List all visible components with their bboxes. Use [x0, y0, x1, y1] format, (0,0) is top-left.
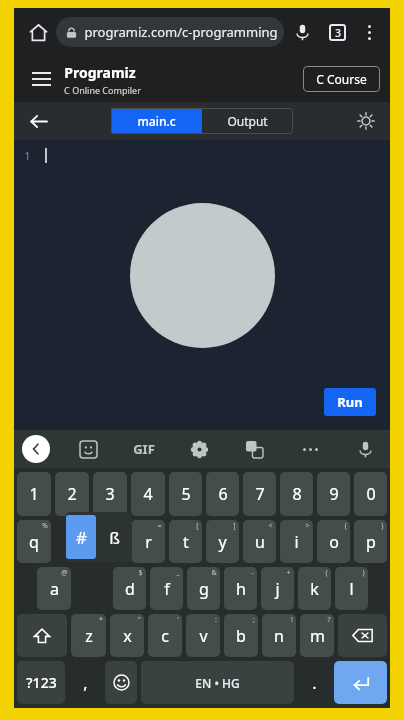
button[interactable]: r	[131, 520, 165, 563]
staticText: x	[123, 625, 132, 647]
staticText: ;	[253, 615, 255, 625]
button[interactable]: ß	[96, 512, 132, 562]
button[interactable]: More options	[354, 17, 384, 47]
button[interactable]: Menu	[24, 62, 58, 96]
button[interactable]: More	[293, 432, 327, 466]
button[interactable]: 9	[317, 472, 350, 516]
button[interactable]: GIF	[127, 432, 161, 466]
button[interactable]: Collapse toolbar	[22, 435, 50, 463]
button[interactable]: ,	[67, 659, 103, 706]
staticText: j	[275, 578, 280, 600]
staticText: %	[42, 521, 48, 531]
button[interactable]: o	[317, 520, 350, 563]
staticText: $	[138, 568, 143, 578]
staticText: 1	[24, 148, 31, 163]
staticText: main.c	[137, 113, 176, 129]
button[interactable]: t	[169, 520, 202, 563]
button[interactable]: 6	[206, 472, 239, 516]
button[interactable]: f	[150, 567, 183, 610]
button[interactable]: 0	[354, 472, 387, 516]
button[interactable]: 7	[243, 472, 276, 516]
button[interactable]: g	[187, 567, 220, 610]
button[interactable]: Run	[324, 388, 376, 416]
staticText: d	[125, 578, 135, 600]
button[interactable]: d	[113, 567, 146, 610]
button[interactable]: a	[37, 567, 71, 610]
button[interactable]: 4	[131, 472, 165, 516]
staticText: f	[164, 578, 170, 600]
staticText: "	[138, 615, 141, 625]
button[interactable]: EN • HG	[141, 661, 294, 704]
staticText: u	[255, 531, 265, 553]
button[interactable]: 3	[93, 472, 127, 516]
button[interactable]: z	[71, 614, 106, 657]
button[interactable]: 1	[17, 472, 51, 516]
staticText: p	[366, 531, 376, 553]
button[interactable]: Home	[20, 14, 56, 50]
staticText: *	[99, 615, 103, 625]
button[interactable]: q	[17, 520, 51, 563]
button[interactable]: i	[280, 520, 313, 563]
staticText: #	[76, 526, 87, 549]
staticText: b	[236, 625, 246, 647]
staticText: 0	[366, 483, 376, 505]
button[interactable]: Stickers	[71, 432, 105, 466]
button[interactable]: x	[110, 614, 144, 657]
button[interactable]: C Course	[303, 66, 380, 92]
button[interactable]: Emoji	[105, 661, 137, 704]
staticText: @	[61, 568, 68, 578]
staticText: +	[286, 568, 291, 578]
button[interactable]: Shift	[17, 614, 67, 657]
staticText: [	[196, 521, 199, 531]
button[interactable]: b	[224, 614, 258, 657]
button[interactable]: k	[298, 567, 331, 610]
button[interactable]: j	[261, 567, 294, 610]
button[interactable]: #	[66, 515, 96, 559]
staticText: 1	[29, 483, 39, 505]
button[interactable]: 8	[280, 472, 313, 516]
staticText: ß	[109, 526, 120, 549]
staticText: <	[268, 521, 273, 531]
button[interactable]: Theme	[350, 105, 382, 137]
staticText: =	[157, 521, 162, 531]
button[interactable]: n	[262, 614, 296, 657]
button[interactable]: Voice search	[284, 14, 320, 50]
button[interactable]: Translate	[237, 432, 271, 466]
staticText: m	[310, 625, 325, 647]
staticText: &	[211, 568, 217, 578]
button[interactable]: y	[206, 520, 239, 563]
button[interactable]: Settings	[182, 432, 216, 466]
staticText: a	[50, 578, 59, 600]
button[interactable]: p	[354, 520, 387, 563]
button[interactable]: l	[335, 567, 368, 610]
button[interactable]: ?123	[17, 661, 65, 704]
button[interactable]: programiz.com/c-programming	[56, 17, 284, 47]
staticText: )	[362, 568, 365, 578]
button[interactable]: Tabs	[320, 15, 354, 49]
staticText: 8	[292, 483, 302, 505]
staticText: 7	[255, 483, 265, 505]
staticText: Programiz	[64, 63, 136, 82]
staticText: 3	[335, 26, 341, 40]
button[interactable]: m	[300, 614, 334, 657]
button[interactable]: v	[186, 614, 220, 657]
button[interactable]: main.c	[111, 108, 202, 134]
staticText: o	[329, 531, 339, 553]
button[interactable]: Back	[22, 105, 54, 137]
button[interactable]: Voice input	[348, 432, 382, 466]
button[interactable]: Backspace	[338, 614, 387, 657]
button[interactable]: 2	[55, 472, 89, 516]
button[interactable]: Output	[202, 108, 293, 134]
staticText: l	[349, 578, 354, 600]
button[interactable]: Enter	[334, 661, 387, 704]
staticText: '	[177, 615, 179, 625]
staticText: 6	[218, 483, 228, 505]
staticText: !	[291, 615, 293, 625]
button[interactable]: u	[243, 520, 276, 563]
button[interactable]: c	[148, 614, 182, 657]
button[interactable]: 5	[169, 472, 202, 516]
staticText: programiz.com/c-programming	[84, 23, 278, 41]
staticText: GIF	[133, 440, 155, 458]
button[interactable]: h	[224, 567, 257, 610]
button[interactable]: .	[296, 659, 332, 706]
